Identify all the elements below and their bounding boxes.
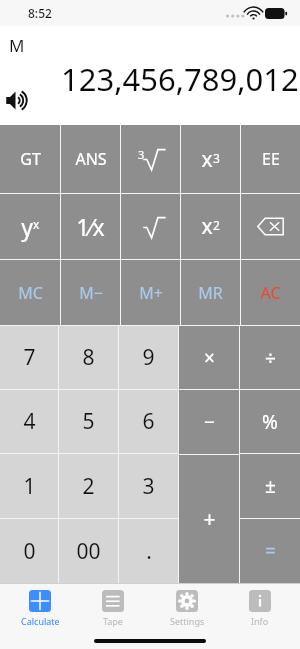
button[interactable]: Tape bbox=[80, 590, 146, 627]
button[interactable]: X squared bbox=[181, 194, 240, 259]
staticText: M+ bbox=[139, 282, 163, 304]
staticText: 5 bbox=[82, 407, 95, 436]
button[interactable]: MC bbox=[0, 260, 60, 325]
button[interactable]: 8 bbox=[59, 326, 118, 389]
staticText: 1 bbox=[23, 472, 36, 501]
button[interactable]: Backspace bbox=[241, 194, 300, 259]
button[interactable]: Multiply bbox=[179, 326, 239, 389]
button[interactable]: AC bbox=[241, 260, 300, 325]
staticText: Tape bbox=[103, 615, 123, 627]
staticText: 8:52 bbox=[28, 5, 52, 21]
staticText: 2 bbox=[82, 472, 95, 501]
staticText: . bbox=[146, 537, 152, 566]
staticText: MR bbox=[198, 282, 223, 304]
button[interactable]: ANS bbox=[61, 125, 120, 193]
button[interactable]: Plus minus bbox=[240, 454, 300, 518]
staticText: 1⁄x bbox=[76, 211, 105, 242]
staticText: 8 bbox=[82, 343, 95, 372]
button[interactable]: 00 bbox=[59, 519, 118, 583]
button[interactable]: Info bbox=[227, 590, 293, 627]
button[interactable]: Add bbox=[179, 455, 239, 583]
button[interactable]: Percent bbox=[240, 390, 300, 453]
staticText: + bbox=[203, 505, 216, 534]
staticText: 2 bbox=[213, 217, 220, 233]
button[interactable]: M plus bbox=[121, 260, 180, 325]
button[interactable]: EE bbox=[241, 125, 300, 193]
button[interactable]: Y to the X bbox=[0, 194, 60, 259]
staticText: 9 bbox=[142, 343, 155, 372]
staticText: 4 bbox=[23, 407, 36, 436]
staticText: AC bbox=[260, 282, 281, 304]
staticText: x bbox=[201, 212, 213, 241]
staticText: 3 bbox=[142, 472, 155, 501]
button[interactable]: Calculate bbox=[7, 590, 73, 627]
staticText: × bbox=[204, 345, 215, 371]
button[interactable]: One over X bbox=[61, 194, 120, 259]
staticText: Settings bbox=[170, 615, 205, 627]
staticText: % bbox=[262, 409, 278, 435]
staticText: EE bbox=[262, 148, 280, 170]
button[interactable]: 9 bbox=[119, 326, 178, 389]
button[interactable]: 3 bbox=[119, 454, 178, 518]
button[interactable]: 5 bbox=[59, 390, 118, 453]
staticText: 6 bbox=[142, 407, 155, 436]
staticText: 123,456,789,012 bbox=[61, 58, 299, 100]
staticText: MC bbox=[18, 282, 43, 304]
staticText: M− bbox=[79, 282, 103, 304]
button[interactable]: GT bbox=[0, 125, 60, 193]
button[interactable]: Square root bbox=[121, 194, 180, 259]
button[interactable]: 7 bbox=[0, 326, 58, 389]
staticText: Info bbox=[251, 615, 269, 627]
staticText: ÷ bbox=[265, 345, 276, 371]
staticText: − bbox=[204, 409, 215, 435]
staticText: 0 bbox=[23, 537, 36, 566]
staticText: 7 bbox=[23, 343, 36, 372]
button[interactable]: Cube root bbox=[121, 125, 180, 193]
staticText: ± bbox=[265, 473, 276, 499]
button[interactable]: X cubed bbox=[181, 125, 240, 193]
button[interactable]: Sound bbox=[5, 88, 30, 113]
button[interactable]: Divide bbox=[240, 326, 300, 389]
staticText: Calculate bbox=[21, 615, 60, 627]
staticText: = bbox=[265, 538, 276, 564]
button[interactable]: M minus bbox=[61, 260, 120, 325]
button[interactable]: Settings bbox=[154, 590, 220, 627]
button[interactable]: 1 bbox=[0, 454, 58, 518]
staticText: M bbox=[9, 34, 25, 57]
staticText: ANS bbox=[75, 148, 107, 170]
button[interactable]: Equals bbox=[240, 519, 300, 583]
button[interactable]: Subtract bbox=[179, 390, 239, 454]
staticText: x bbox=[33, 216, 40, 232]
button[interactable]: 2 bbox=[59, 454, 118, 518]
button[interactable]: . bbox=[119, 519, 178, 583]
button[interactable]: 4 bbox=[0, 390, 58, 453]
staticText: GT bbox=[20, 148, 41, 170]
staticText: x bbox=[201, 145, 213, 174]
staticText: 3 bbox=[138, 147, 145, 162]
staticText: 3 bbox=[213, 150, 220, 166]
staticText: y bbox=[21, 211, 33, 242]
button[interactable]: 0 bbox=[0, 519, 58, 583]
button[interactable]: 6 bbox=[119, 390, 178, 453]
staticText: 00 bbox=[76, 537, 101, 566]
button[interactable]: MR bbox=[181, 260, 240, 325]
